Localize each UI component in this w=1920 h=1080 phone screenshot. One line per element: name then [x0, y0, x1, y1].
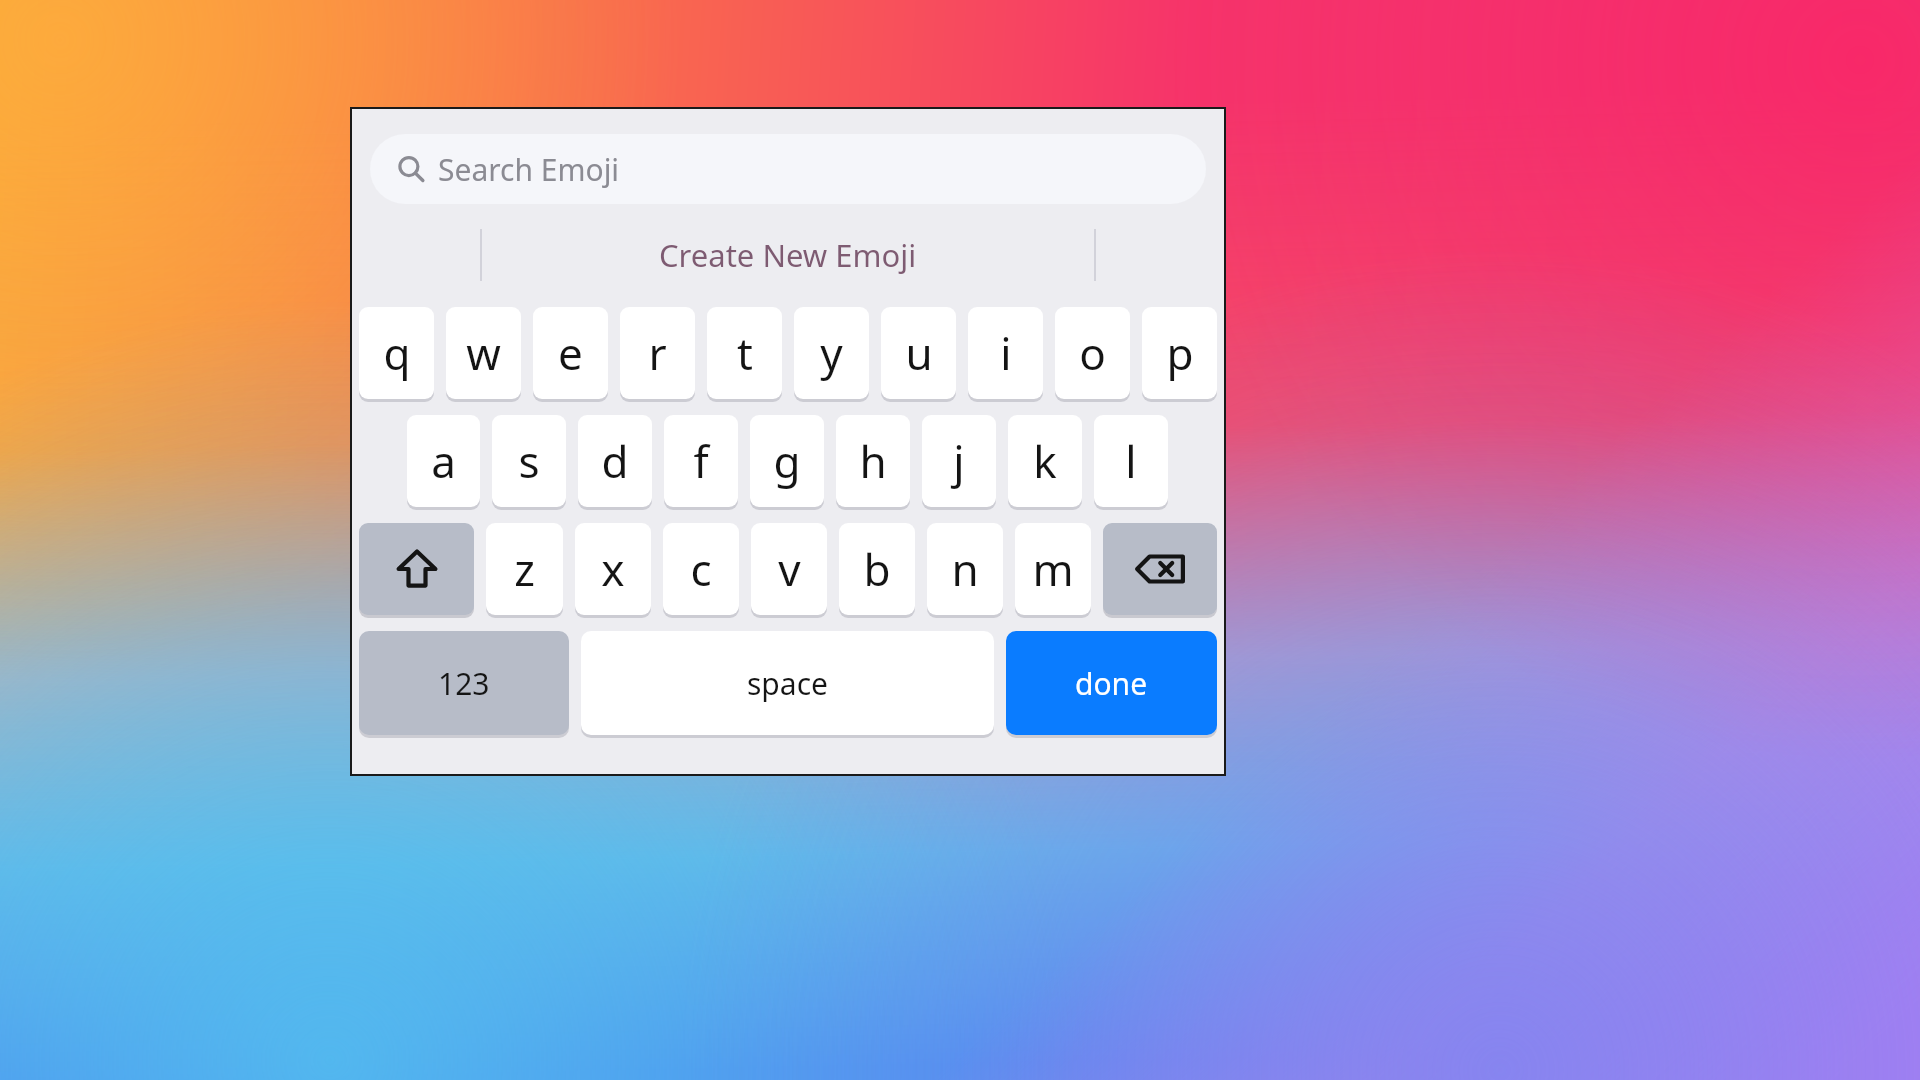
- button[interactable]: Create New Emoji: [649, 230, 927, 280]
- button[interactable]: g: [750, 415, 824, 507]
- staticText: 123: [438, 663, 490, 704]
- button[interactable]: n: [927, 523, 1003, 615]
- button[interactable]: m: [1015, 523, 1091, 615]
- button[interactable]: w: [446, 307, 521, 399]
- staticText: Search Emoji: [438, 149, 620, 190]
- staticText: j: [953, 431, 965, 491]
- staticText: t: [737, 323, 753, 383]
- button[interactable]: v: [751, 523, 827, 615]
- staticText: u: [905, 323, 933, 383]
- button[interactable]: x: [575, 523, 651, 615]
- button[interactable]: done: [1006, 631, 1217, 735]
- button[interactable]: e: [533, 307, 608, 399]
- staticText: r: [648, 323, 667, 383]
- button[interactable]: t: [707, 307, 782, 399]
- button[interactable]: c: [663, 523, 739, 615]
- staticText: o: [1079, 323, 1106, 383]
- button[interactable]: h: [836, 415, 910, 507]
- staticText: k: [1033, 431, 1057, 491]
- staticText: d: [601, 431, 629, 491]
- button[interactable]: a: [407, 415, 480, 507]
- staticText: done: [1075, 663, 1148, 704]
- staticText: x: [601, 539, 625, 599]
- button[interactable]: d: [578, 415, 652, 507]
- button[interactable]: Backspace: [1103, 523, 1217, 615]
- button[interactable]: 123: [359, 631, 569, 735]
- staticText: z: [514, 539, 535, 599]
- button[interactable]: u: [881, 307, 956, 399]
- button[interactable]: k: [1008, 415, 1082, 507]
- button[interactable]: j: [922, 415, 996, 507]
- staticText: c: [690, 539, 712, 599]
- staticText: h: [859, 431, 887, 491]
- button[interactable]: l: [1094, 415, 1168, 507]
- button[interactable]: q: [359, 307, 434, 399]
- staticText: q: [383, 323, 411, 383]
- button[interactable]: f: [664, 415, 738, 507]
- staticText: p: [1166, 323, 1194, 383]
- button[interactable]: z: [486, 523, 563, 615]
- staticText: l: [1125, 431, 1137, 491]
- staticText: m: [1032, 539, 1074, 599]
- staticText: y: [820, 323, 843, 383]
- button[interactable]: Shift: [359, 523, 474, 615]
- button[interactable]: o: [1055, 307, 1130, 399]
- staticText: b: [863, 539, 891, 599]
- staticText: g: [773, 431, 801, 491]
- button[interactable]: i: [968, 307, 1043, 399]
- staticText: Create New Emoji: [659, 234, 917, 276]
- staticText: e: [558, 323, 583, 383]
- staticText: v: [778, 539, 801, 599]
- staticText: i: [1000, 323, 1012, 383]
- staticText: space: [747, 663, 828, 704]
- button[interactable]: r: [620, 307, 695, 399]
- button[interactable]: y: [794, 307, 869, 399]
- button[interactable]: s: [492, 415, 566, 507]
- button[interactable]: p: [1142, 307, 1217, 399]
- staticText: f: [693, 431, 709, 491]
- staticText: s: [518, 431, 540, 491]
- staticText: n: [951, 539, 979, 599]
- button[interactable]: space: [581, 631, 994, 735]
- button[interactable]: Search Emoji: [370, 134, 1206, 204]
- staticText: w: [466, 323, 501, 383]
- button[interactable]: b: [839, 523, 915, 615]
- staticText: a: [431, 431, 456, 491]
